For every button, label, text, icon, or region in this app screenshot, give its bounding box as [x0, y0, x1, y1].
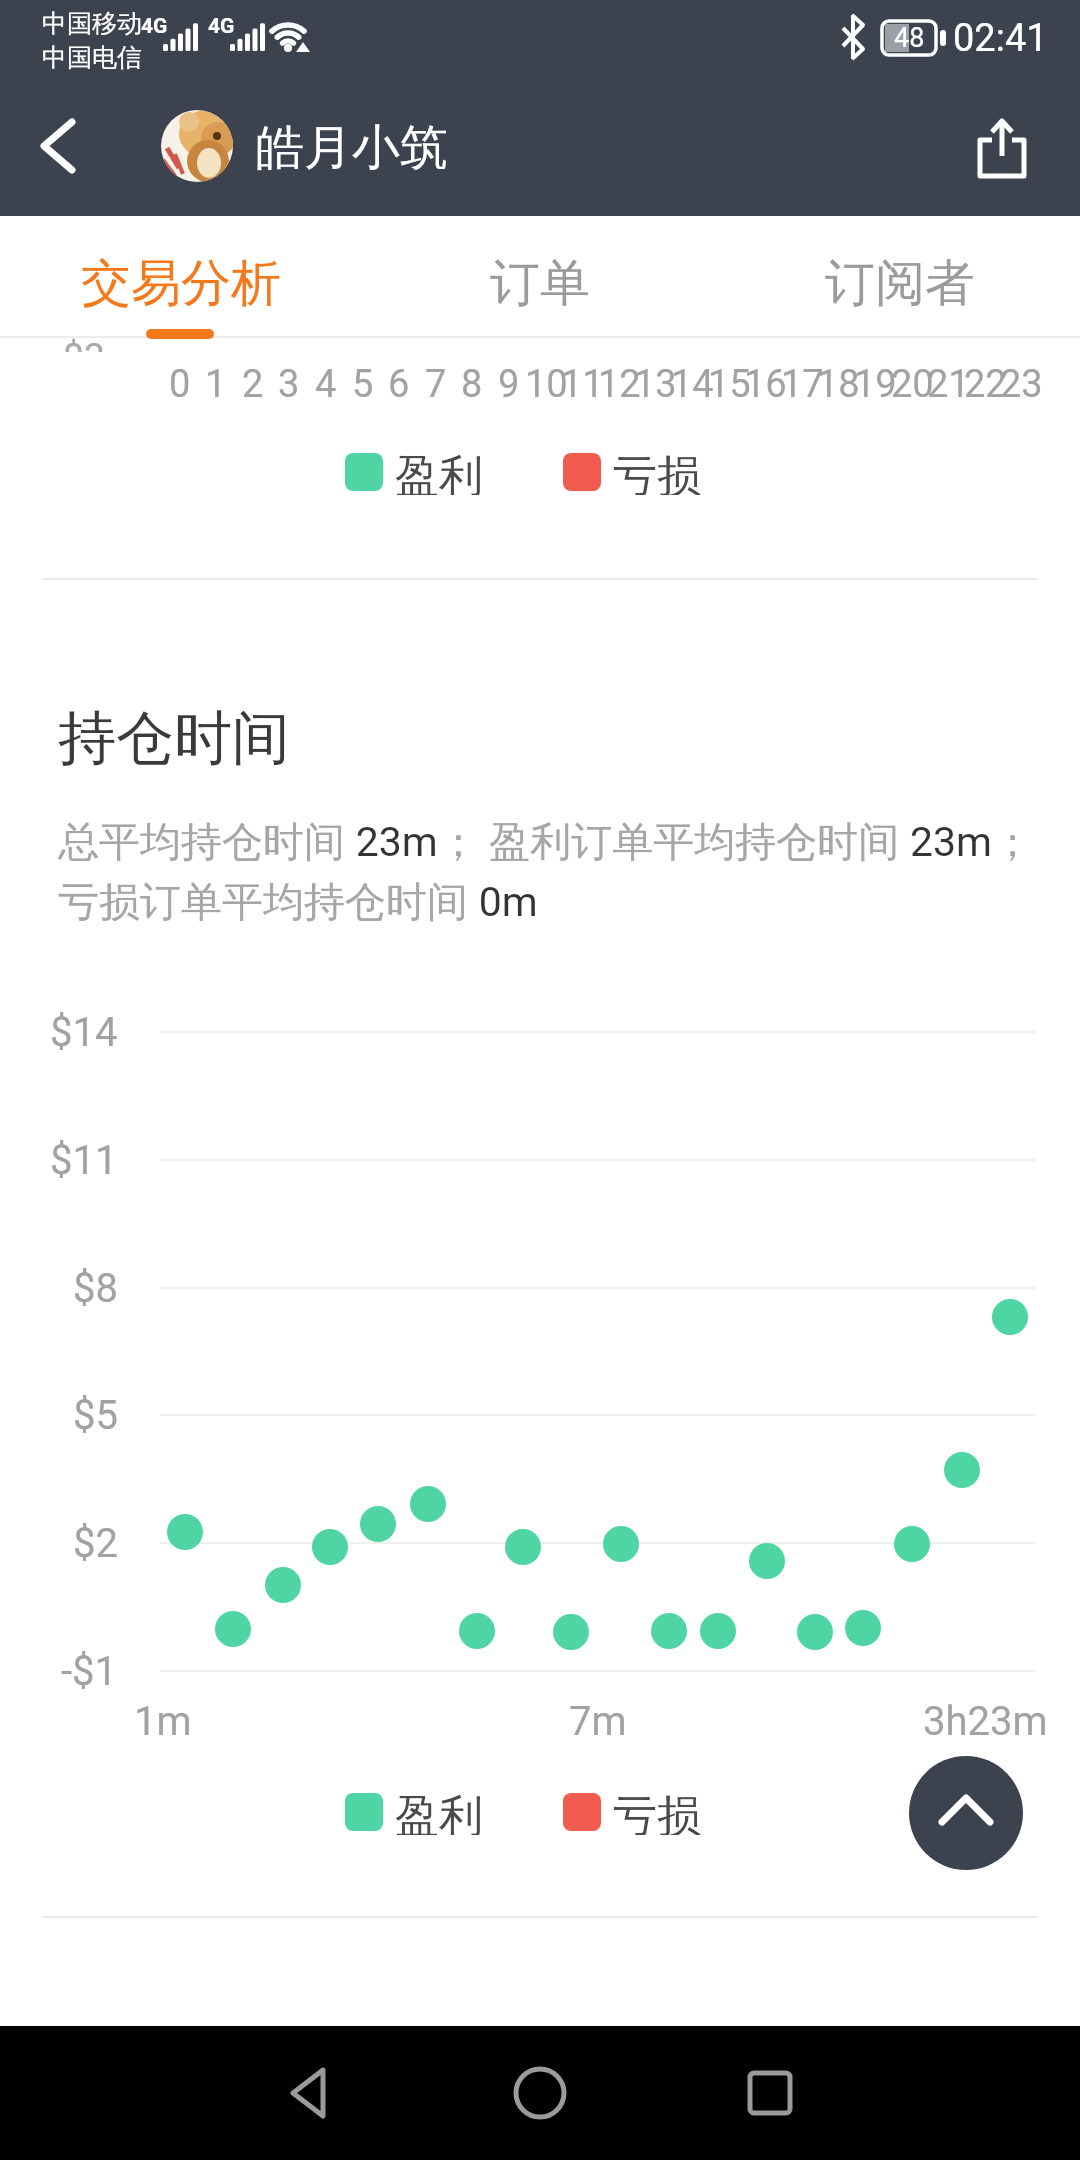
button[interactable]: 订阅者: [790, 252, 1010, 312]
staticText: 持仓时间: [58, 702, 290, 775]
staticText: 中国电信: [42, 42, 142, 73]
staticText: 7: [425, 362, 447, 407]
staticText: 1m: [134, 1698, 192, 1745]
button[interactable]: [20, 106, 100, 186]
staticText: 18: [817, 362, 860, 407]
button[interactable]: [161, 110, 233, 182]
button[interactable]: [480, 2038, 600, 2148]
staticText: 1: [205, 362, 227, 407]
staticText: 皓月小筑: [256, 118, 448, 178]
staticText: 22: [964, 362, 1007, 407]
staticText: 15: [708, 362, 751, 407]
staticText: 订阅者: [825, 252, 975, 312]
staticText: 盈利: [395, 449, 483, 495]
staticText: 16: [744, 362, 787, 407]
staticText: 13: [634, 362, 677, 407]
staticText: 8: [461, 362, 483, 407]
staticText: $5: [73, 1392, 118, 1439]
staticText: 亏损: [613, 449, 701, 495]
staticText: 23: [1000, 362, 1043, 407]
staticText: $2: [73, 1520, 118, 1567]
staticText: 48: [894, 22, 925, 54]
staticText: 7m: [569, 1698, 627, 1745]
staticText: 19: [854, 362, 897, 407]
staticText: 02:41: [953, 16, 1048, 61]
staticText: 6: [388, 362, 410, 407]
staticText: -$1: [61, 1648, 118, 1695]
staticText: 10: [525, 362, 568, 407]
staticText: 20: [891, 362, 934, 407]
staticText: 4: [315, 362, 337, 407]
staticText: 12: [598, 362, 641, 407]
staticText: 亏损订单平均持仓时间 0m: [58, 872, 538, 928]
staticText: 5: [352, 362, 374, 407]
staticText: 3h23m: [923, 1698, 1048, 1745]
button[interactable]: [710, 2038, 830, 2148]
staticText: $8: [73, 1265, 118, 1312]
staticText: 中国移动: [42, 8, 142, 39]
staticText: 4G: [141, 14, 168, 39]
staticText: $14: [50, 1009, 118, 1056]
staticText: 21: [927, 362, 970, 407]
button[interactable]: 订单: [430, 252, 650, 312]
staticText: $11: [50, 1137, 118, 1184]
button[interactable]: [909, 1756, 1023, 1870]
staticText: 4G: [208, 14, 235, 39]
staticText: 17: [781, 362, 824, 407]
button[interactable]: [250, 2038, 370, 2148]
staticText: 0: [169, 362, 191, 407]
staticText: 14: [671, 362, 714, 407]
staticText: 亏损: [613, 1789, 701, 1835]
staticText: 交易分析: [81, 252, 281, 312]
staticText: 盈利: [395, 1789, 483, 1835]
staticText: 11: [561, 362, 604, 407]
staticText: 订单: [490, 252, 590, 312]
staticText: 2: [242, 362, 264, 407]
staticText: 9: [498, 362, 520, 407]
button[interactable]: [960, 110, 1044, 194]
staticText: -$3: [52, 336, 106, 352]
staticText: 总平均持仓时间 23m； 盈利订单平均持仓时间 23m；: [58, 812, 1034, 868]
staticText: 3: [278, 362, 300, 407]
